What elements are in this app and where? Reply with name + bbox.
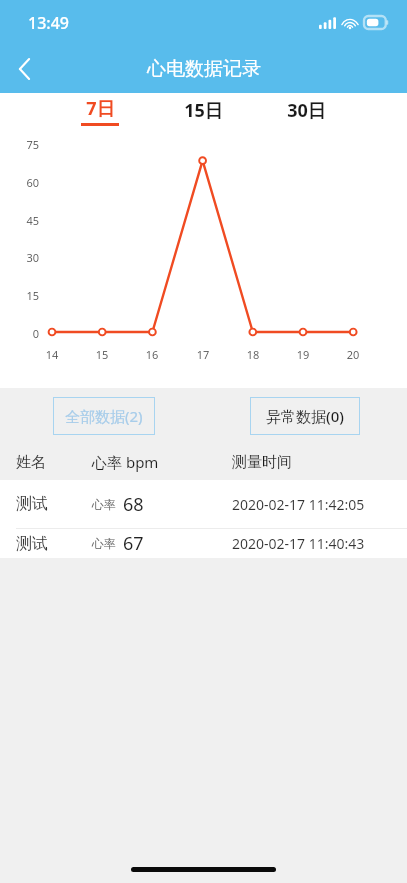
staticText: 20 — [343, 347, 363, 362]
staticText: 15 — [92, 347, 112, 362]
staticText: 2020-02-17 11:40:43 — [232, 534, 365, 553]
staticText: 姓名 — [16, 453, 92, 472]
staticText: 30 — [19, 250, 39, 265]
staticText: 30日 — [287, 98, 326, 123]
staticText: 15 — [19, 288, 39, 303]
staticText: 75 — [19, 137, 39, 152]
staticText: 心率 — [92, 536, 116, 551]
staticText: 68 — [123, 492, 144, 517]
staticText: 全部数据(2) — [65, 406, 143, 426]
staticText: 16 — [142, 347, 162, 362]
staticText: 45 — [19, 213, 39, 228]
button[interactable]: 异常数据(0) — [250, 397, 360, 435]
staticText: 7日 — [86, 96, 115, 121]
staticText: 测量时间 — [232, 453, 292, 472]
button[interactable]: 全部数据(2) — [53, 397, 155, 435]
staticText: 0 — [19, 326, 39, 341]
button[interactable]: 15日 — [175, 98, 231, 125]
staticText: 13:49 — [28, 12, 69, 34]
staticText: 测试 — [16, 494, 92, 514]
button[interactable]: Back — [0, 45, 48, 93]
button[interactable]: 7日 — [72, 96, 128, 126]
staticText: 18 — [243, 347, 263, 362]
staticText: 心率 bpm — [92, 452, 232, 472]
staticText: 测试 — [16, 534, 92, 554]
staticText: 17 — [193, 347, 213, 362]
staticText: 67 — [123, 531, 144, 556]
staticText: 2020-02-17 11:42:05 — [232, 495, 365, 514]
staticText: 15日 — [184, 98, 223, 123]
staticText: 19 — [293, 347, 313, 362]
staticText: 心率 — [92, 497, 116, 512]
staticText: 心电数据记录 — [147, 57, 261, 81]
button[interactable]: 测试 — [0, 529, 407, 558]
staticText: 14 — [42, 347, 62, 362]
button[interactable]: 30日 — [278, 98, 334, 125]
staticText: 60 — [19, 175, 39, 190]
button[interactable]: 测试 — [0, 480, 407, 528]
staticText: 异常数据(0) — [266, 406, 344, 426]
